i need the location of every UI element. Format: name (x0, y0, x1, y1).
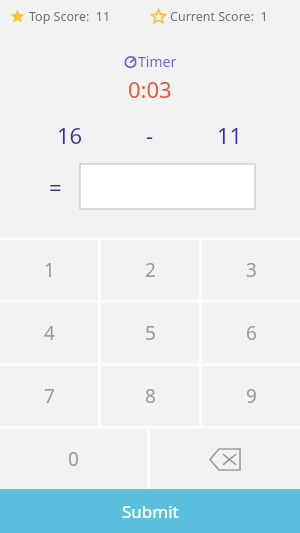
button[interactable]: 6 (202, 303, 300, 363)
staticText: - (146, 120, 154, 150)
staticText: 11 (217, 120, 243, 150)
button[interactable]: 8 (101, 366, 199, 426)
button[interactable]: 3 (202, 240, 300, 300)
button[interactable]: 7 (0, 366, 98, 426)
staticText: 0:03 (128, 74, 172, 104)
staticText: 9 (246, 383, 257, 409)
staticText: 16 (57, 120, 83, 150)
button[interactable]: 1 (0, 240, 98, 300)
button[interactable]: 0 (0, 429, 147, 489)
staticText: Submit (122, 500, 179, 523)
button[interactable]: Current Score: 1 (149, 4, 270, 29)
staticText: 5 (145, 320, 156, 346)
staticText: Timer (138, 52, 177, 71)
button[interactable]: 4 (0, 303, 98, 363)
button[interactable]: 2 (101, 240, 199, 300)
staticText: = (49, 172, 62, 202)
staticText: 1 (44, 257, 55, 283)
staticText: 0 (68, 446, 79, 472)
staticText: 8 (145, 383, 156, 409)
button[interactable]: Submit (0, 489, 300, 533)
button[interactable]: Backspace (150, 429, 300, 489)
staticText: 3 (246, 257, 257, 283)
button[interactable]: Top Score: 11 (8, 4, 113, 29)
staticText: 4 (44, 320, 55, 346)
button[interactable]: Answer input (80, 164, 255, 209)
staticText: 2 (145, 257, 156, 283)
staticText: Current Score: 1 (170, 8, 268, 25)
button[interactable]: 5 (101, 303, 199, 363)
staticText: 7 (44, 383, 55, 409)
button[interactable]: 9 (202, 366, 300, 426)
staticText: 6 (246, 320, 257, 346)
staticText: Top Score: 11 (29, 8, 111, 25)
